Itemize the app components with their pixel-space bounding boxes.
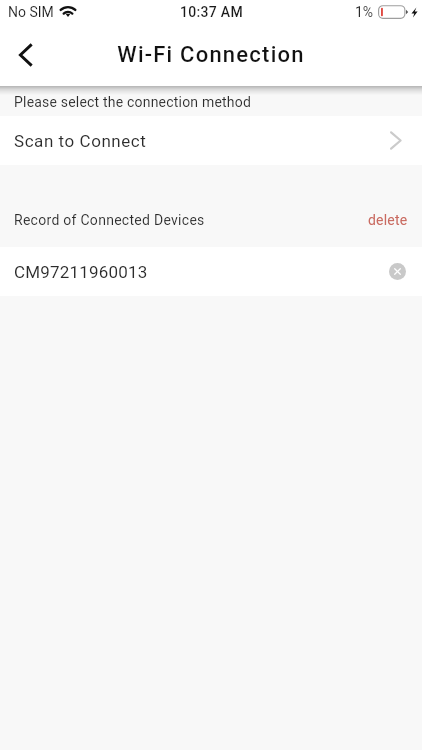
button[interactable]: Scan to Connect bbox=[0, 116, 422, 165]
staticText: 10:37 AM bbox=[180, 4, 244, 20]
staticText: CM97211960013 bbox=[14, 262, 148, 282]
staticText: Record of Connected Devices bbox=[14, 212, 205, 228]
button[interactable]: Remove device bbox=[389, 263, 406, 280]
button[interactable]: CM97211960013 bbox=[0, 247, 422, 296]
button[interactable]: delete bbox=[351, 203, 422, 237]
staticText: Please select the connection method bbox=[14, 94, 252, 110]
button[interactable]: Back bbox=[0, 26, 50, 86]
staticText: Wi-Fi Connection bbox=[117, 42, 305, 68]
staticText: No SIM bbox=[8, 4, 54, 20]
staticText: delete bbox=[368, 212, 408, 228]
staticText: 1% bbox=[355, 4, 374, 20]
staticText: Scan to Connect bbox=[14, 131, 147, 151]
